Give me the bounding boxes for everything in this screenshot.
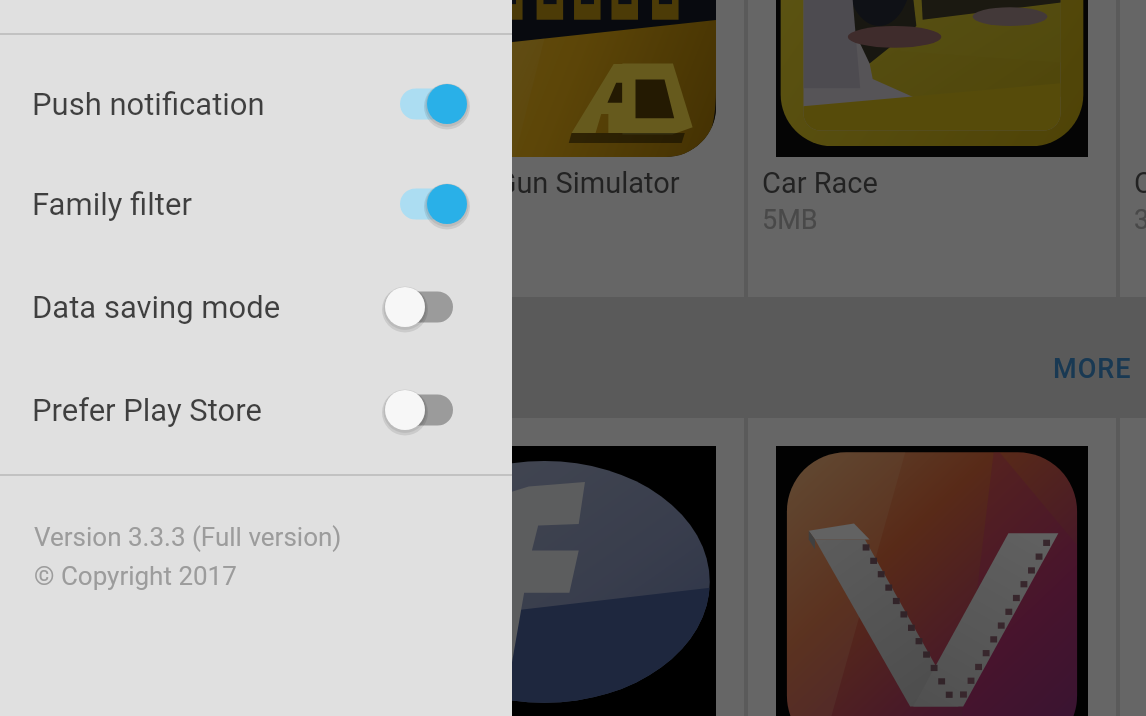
staticText: Data saving mode [32,289,281,325]
staticText: Family filter [32,186,192,222]
staticText: MORE [1053,353,1132,385]
button[interactable]: Prefer Play Store [0,361,512,459]
staticText: 12MB [390,204,461,236]
button[interactable]: MORE [1045,345,1140,393]
other: Switch off [400,284,454,330]
button[interactable]: Facebook [376,418,744,716]
staticText: Cut the Rope [1134,166,1146,200]
staticText: Modern Gun Simulator [390,166,680,200]
staticText: Car Race [762,166,878,200]
other: Switch on [400,181,454,227]
other: Switch off [400,387,454,433]
button[interactable]: VidMate [748,418,1116,716]
staticText: Version 3.3.3 (Full version) [34,522,342,552]
staticText: 3MB [1134,204,1146,236]
button[interactable]: Push notification [0,55,512,153]
button[interactable]: Car Race [748,0,1116,297]
button[interactable]: Modern Gun Simulator [376,0,744,297]
button[interactable]: Cut the Rope [1120,0,1146,297]
staticText: 5MB [762,204,818,236]
button[interactable]: Data saving mode [0,258,512,356]
other: Switch on [400,81,454,127]
button[interactable]: Family filter [0,155,512,253]
staticText: Prefer Play Store [32,392,262,428]
staticText: Push notification [32,86,265,122]
staticText: © Copyright 2017 [34,561,237,591]
